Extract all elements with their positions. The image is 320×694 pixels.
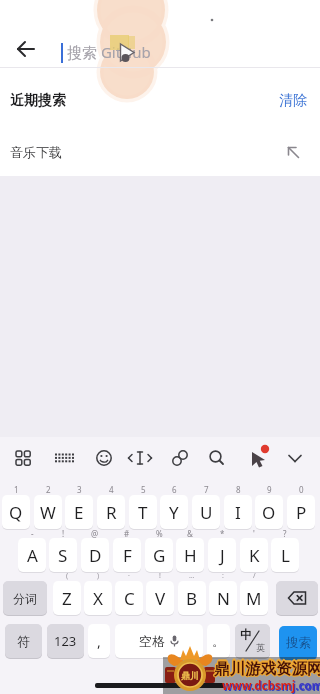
staticText: 鼎川游戏资源网: [214, 660, 320, 680]
staticText: 鼎川游戏资源网: [215, 659, 320, 679]
staticText: G: [153, 544, 166, 567]
button[interactable]: 分词: [3, 581, 47, 615]
button[interactable]: K: [240, 538, 268, 572]
staticText: 鼎川游戏资源网: [213, 659, 320, 679]
button[interactable]: 音乐下载: [0, 137, 320, 167]
staticText: -: [31, 528, 34, 538]
button[interactable]: [276, 581, 318, 615]
button[interactable]: [10, 34, 42, 64]
staticText: 2: [46, 484, 51, 494]
staticText: Z: [62, 587, 72, 610]
staticText: 英: [256, 642, 265, 653]
button[interactable]: H: [176, 538, 204, 572]
staticText: 中: [240, 627, 252, 642]
staticText: ): [97, 571, 100, 580]
staticText: O: [262, 501, 276, 524]
staticText: 123: [54, 632, 77, 650]
staticText: 鼎川游戏资源网: [215, 658, 320, 678]
button[interactable]: V: [146, 581, 174, 615]
staticText: I: [235, 501, 241, 524]
staticText: 。: [212, 633, 225, 649]
button[interactable]: F: [113, 538, 141, 572]
button[interactable]: U: [192, 495, 220, 529]
button[interactable]: D: [81, 538, 109, 572]
staticText: B: [186, 587, 198, 610]
staticText: E: [74, 501, 84, 524]
button[interactable]: 清除: [279, 92, 320, 110]
button[interactable]: I: [224, 495, 252, 529]
staticText: 7: [204, 484, 209, 494]
button[interactable]: G: [145, 538, 173, 572]
staticText: &: [187, 528, 193, 538]
staticText: 鼎川游戏资源网: [214, 659, 320, 679]
button[interactable]: W: [34, 495, 62, 529]
staticText: L: [281, 544, 290, 567]
staticText: 0: [299, 484, 304, 494]
button[interactable]: A: [18, 538, 46, 572]
staticText: %: [156, 528, 163, 538]
button[interactable]: J: [208, 538, 236, 572]
button[interactable]: S: [49, 538, 77, 572]
staticText: ?: [283, 528, 287, 538]
button[interactable]: P: [287, 495, 315, 529]
staticText: :: [222, 571, 224, 580]
button[interactable]: 空格: [115, 624, 203, 658]
button[interactable]: Q: [2, 495, 30, 529]
staticText: W: [40, 501, 56, 524]
staticText: N: [217, 587, 230, 610]
staticText: 音乐下载: [10, 144, 62, 160]
staticText: 6: [172, 484, 177, 494]
staticText: *: [220, 528, 225, 538]
staticText: Q: [9, 501, 23, 524]
button[interactable]: 123: [47, 624, 84, 658]
staticText: 搜索 GitHub: [67, 42, 151, 62]
staticText: T: [138, 501, 148, 524]
staticText: ·: [128, 571, 130, 580]
staticText: X: [93, 587, 103, 610]
button[interactable]: R: [97, 495, 125, 529]
staticText: 鼎川游戏资源网: [213, 658, 320, 678]
button[interactable]: B: [178, 581, 206, 615]
staticText: C: [124, 587, 135, 610]
button[interactable]: Z: [53, 581, 81, 615]
staticText: 8: [236, 484, 241, 494]
staticText: 9: [267, 484, 272, 494]
button[interactable]: L: [271, 538, 299, 572]
staticText: !: [159, 571, 161, 580]
staticText: 鼎川游戏资源网: [213, 659, 320, 679]
staticText: H: [184, 544, 197, 567]
staticText: 分词: [13, 591, 37, 606]
button[interactable]: 搜索: [279, 626, 317, 660]
button[interactable]: N: [209, 581, 237, 615]
staticText: 5: [141, 484, 146, 494]
staticText: @: [91, 528, 99, 538]
staticText: /: [253, 571, 256, 580]
button[interactable]: C: [115, 581, 143, 615]
staticText: F: [123, 544, 132, 567]
staticText: Y: [169, 501, 179, 524]
staticText: 空格: [139, 633, 165, 649]
button[interactable]: 中: [235, 624, 270, 658]
button[interactable]: 符: [5, 624, 42, 658]
staticText: J: [220, 544, 225, 567]
staticText: S: [58, 544, 68, 567]
staticText: 鼎川游戏资源网: [214, 657, 320, 677]
staticText: 鼎川游戏资源网: [215, 659, 320, 679]
button[interactable]: M: [240, 581, 268, 615]
staticText: #: [124, 528, 130, 538]
button[interactable]: Y: [160, 495, 188, 529]
staticText: U: [200, 501, 213, 524]
staticText: 鼎川: [181, 670, 199, 681]
staticText: V: [155, 587, 166, 610]
button[interactable]: O: [255, 495, 283, 529]
staticText: !: [62, 528, 65, 538]
button[interactable]: T: [129, 495, 157, 529]
staticText: P: [296, 501, 307, 524]
staticText: 搜索: [286, 635, 311, 651]
button[interactable]: X: [84, 581, 112, 615]
button[interactable]: 。: [207, 624, 230, 658]
staticText: M: [246, 587, 262, 610]
staticText: 清除: [279, 92, 307, 110]
button[interactable]: E: [65, 495, 93, 529]
button[interactable]: ,: [88, 624, 110, 658]
